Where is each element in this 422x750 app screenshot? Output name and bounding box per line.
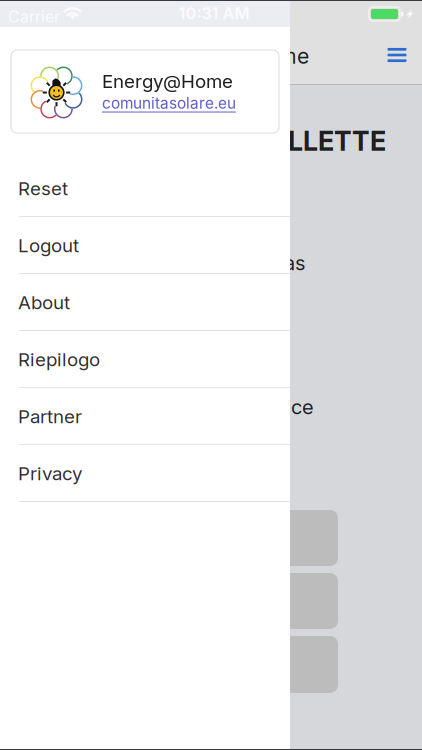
button[interactable]: Bolletta 3 bbox=[226, 636, 338, 693]
staticText: Privacy bbox=[18, 462, 82, 485]
staticText: Energy@Home bbox=[102, 70, 233, 93]
staticText: BOLLETTE bbox=[251, 125, 386, 157]
staticText: Partner bbox=[18, 405, 82, 428]
button[interactable]: Privacy bbox=[0, 445, 290, 502]
staticText: Reset bbox=[18, 177, 68, 200]
button[interactable]: Partner bbox=[0, 388, 290, 445]
button[interactable]: Logout bbox=[0, 217, 290, 274]
staticText: luce bbox=[274, 395, 314, 419]
button[interactable]: Riepilogo bbox=[0, 331, 290, 388]
button[interactable]: Menu bbox=[375, 33, 419, 77]
staticText: Home bbox=[249, 43, 309, 69]
staticText: Logout bbox=[18, 234, 79, 257]
staticText: comunitasolare.eu bbox=[102, 94, 236, 113]
button[interactable]: About bbox=[0, 274, 290, 331]
staticText: Carrier bbox=[8, 7, 60, 26]
staticText: gas bbox=[272, 251, 305, 275]
staticText: About bbox=[18, 291, 70, 314]
staticText: Riepilogo bbox=[18, 348, 100, 371]
button[interactable]: Reset bbox=[0, 160, 290, 217]
button[interactable]: Bolletta 1 bbox=[226, 510, 338, 566]
button[interactable]: Bolletta 2 bbox=[226, 573, 338, 629]
staticText: 10:31 AM bbox=[178, 4, 249, 23]
